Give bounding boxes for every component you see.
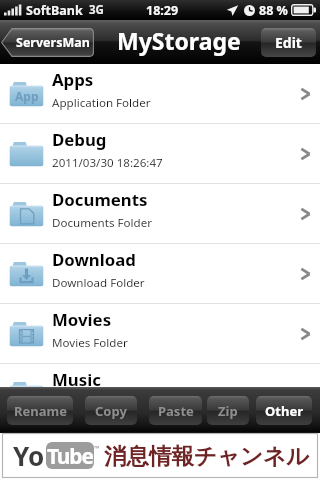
staticText: 2011/03/30 18:26:47: [52, 155, 163, 171]
staticText: Download Folder: [52, 275, 145, 291]
staticText: SoftBank: [26, 2, 83, 19]
staticText: Application Folder: [52, 95, 151, 111]
button[interactable]: Music: [0, 364, 320, 387]
button[interactable]: App: [0, 64, 320, 123]
button[interactable]: Debug: [0, 124, 320, 183]
staticText: Download: [52, 248, 136, 271]
staticText: Zip: [218, 402, 238, 420]
staticText: Rename: [14, 402, 67, 420]
button[interactable]: Movies: [0, 304, 320, 363]
button[interactable]: Other: [256, 396, 312, 425]
staticText: 3G: [89, 2, 104, 18]
staticText: 88 %: [259, 2, 288, 19]
staticText: Documents: [52, 188, 148, 211]
button[interactable]: Rename: [7, 396, 73, 425]
staticText: Debug: [52, 128, 107, 151]
staticText: ™: [94, 444, 100, 454]
button[interactable]: Paste: [149, 396, 202, 425]
staticText: App: [15, 88, 39, 104]
staticText: Other: [265, 402, 303, 420]
staticText: Movies: [52, 308, 112, 331]
button[interactable]: Download: [0, 244, 320, 303]
staticText: Movies Folder: [52, 335, 128, 351]
staticText: MyStorage: [117, 25, 241, 56]
staticText: ServersMan: [16, 34, 90, 51]
staticText: Documents Folder: [52, 215, 152, 231]
staticText: 消息情報チャンネル: [104, 442, 310, 470]
staticText: Tube: [47, 442, 93, 469]
staticText: 18:29: [146, 2, 179, 19]
button[interactable]: Copy: [85, 396, 137, 425]
staticText: You: [13, 438, 62, 473]
button[interactable]: Zip: [207, 396, 249, 425]
button[interactable]: Edit: [261, 28, 316, 57]
button[interactable]: ServersMan: [1, 28, 94, 57]
staticText: Copy: [95, 402, 127, 420]
button[interactable]: You: [2, 433, 318, 478]
staticText: Apps: [52, 68, 94, 91]
button[interactable]: Documents: [0, 184, 320, 243]
staticText: Music: [52, 368, 101, 387]
staticText: Edit: [275, 33, 302, 52]
staticText: Paste: [158, 402, 194, 420]
